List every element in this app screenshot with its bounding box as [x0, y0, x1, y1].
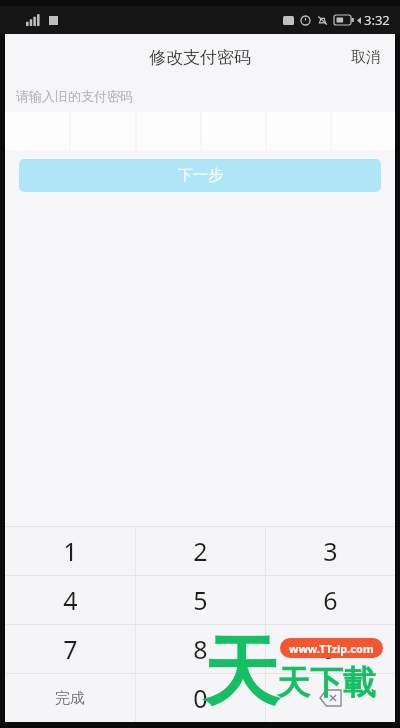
- staticText: 7: [63, 632, 78, 666]
- button[interactable]: 0: [136, 674, 265, 722]
- staticText: 下一步: [178, 166, 223, 185]
- staticText: 天: [203, 625, 279, 721]
- button[interactable]: 取消: [337, 38, 395, 77]
- button[interactable]: 6: [266, 576, 395, 624]
- staticText: 完成: [55, 689, 85, 708]
- staticText: 取消: [351, 48, 381, 67]
- staticText: 2: [193, 534, 208, 568]
- button[interactable]: 4: [5, 576, 135, 624]
- staticText: 天下載: [277, 662, 376, 704]
- button[interactable]: 8: [136, 625, 265, 673]
- staticText: 8: [193, 632, 208, 666]
- staticText: 4: [63, 583, 78, 617]
- button[interactable]: 1: [5, 527, 135, 575]
- button[interactable]: 5: [136, 576, 265, 624]
- staticText: 0: [193, 681, 208, 715]
- staticText: 6: [323, 583, 338, 617]
- staticText: 请输入旧的支付密码: [16, 88, 133, 104]
- button[interactable]: 下一步: [19, 159, 381, 192]
- staticText: 5: [193, 583, 208, 617]
- staticText: www.TTzip.com: [289, 641, 374, 656]
- button[interactable]: 7: [5, 625, 135, 673]
- button[interactable]: Delete: [266, 674, 395, 722]
- staticText: 修改支付密码: [149, 47, 251, 68]
- button[interactable]: 2: [136, 527, 265, 575]
- button[interactable]: 9: [266, 625, 395, 673]
- button[interactable]: 完成: [5, 674, 135, 722]
- staticText: 1: [63, 534, 78, 568]
- staticText: 3:32: [364, 11, 390, 29]
- staticText: 9: [323, 632, 338, 666]
- button[interactable]: 3: [266, 527, 395, 575]
- staticText: 3: [323, 534, 338, 568]
